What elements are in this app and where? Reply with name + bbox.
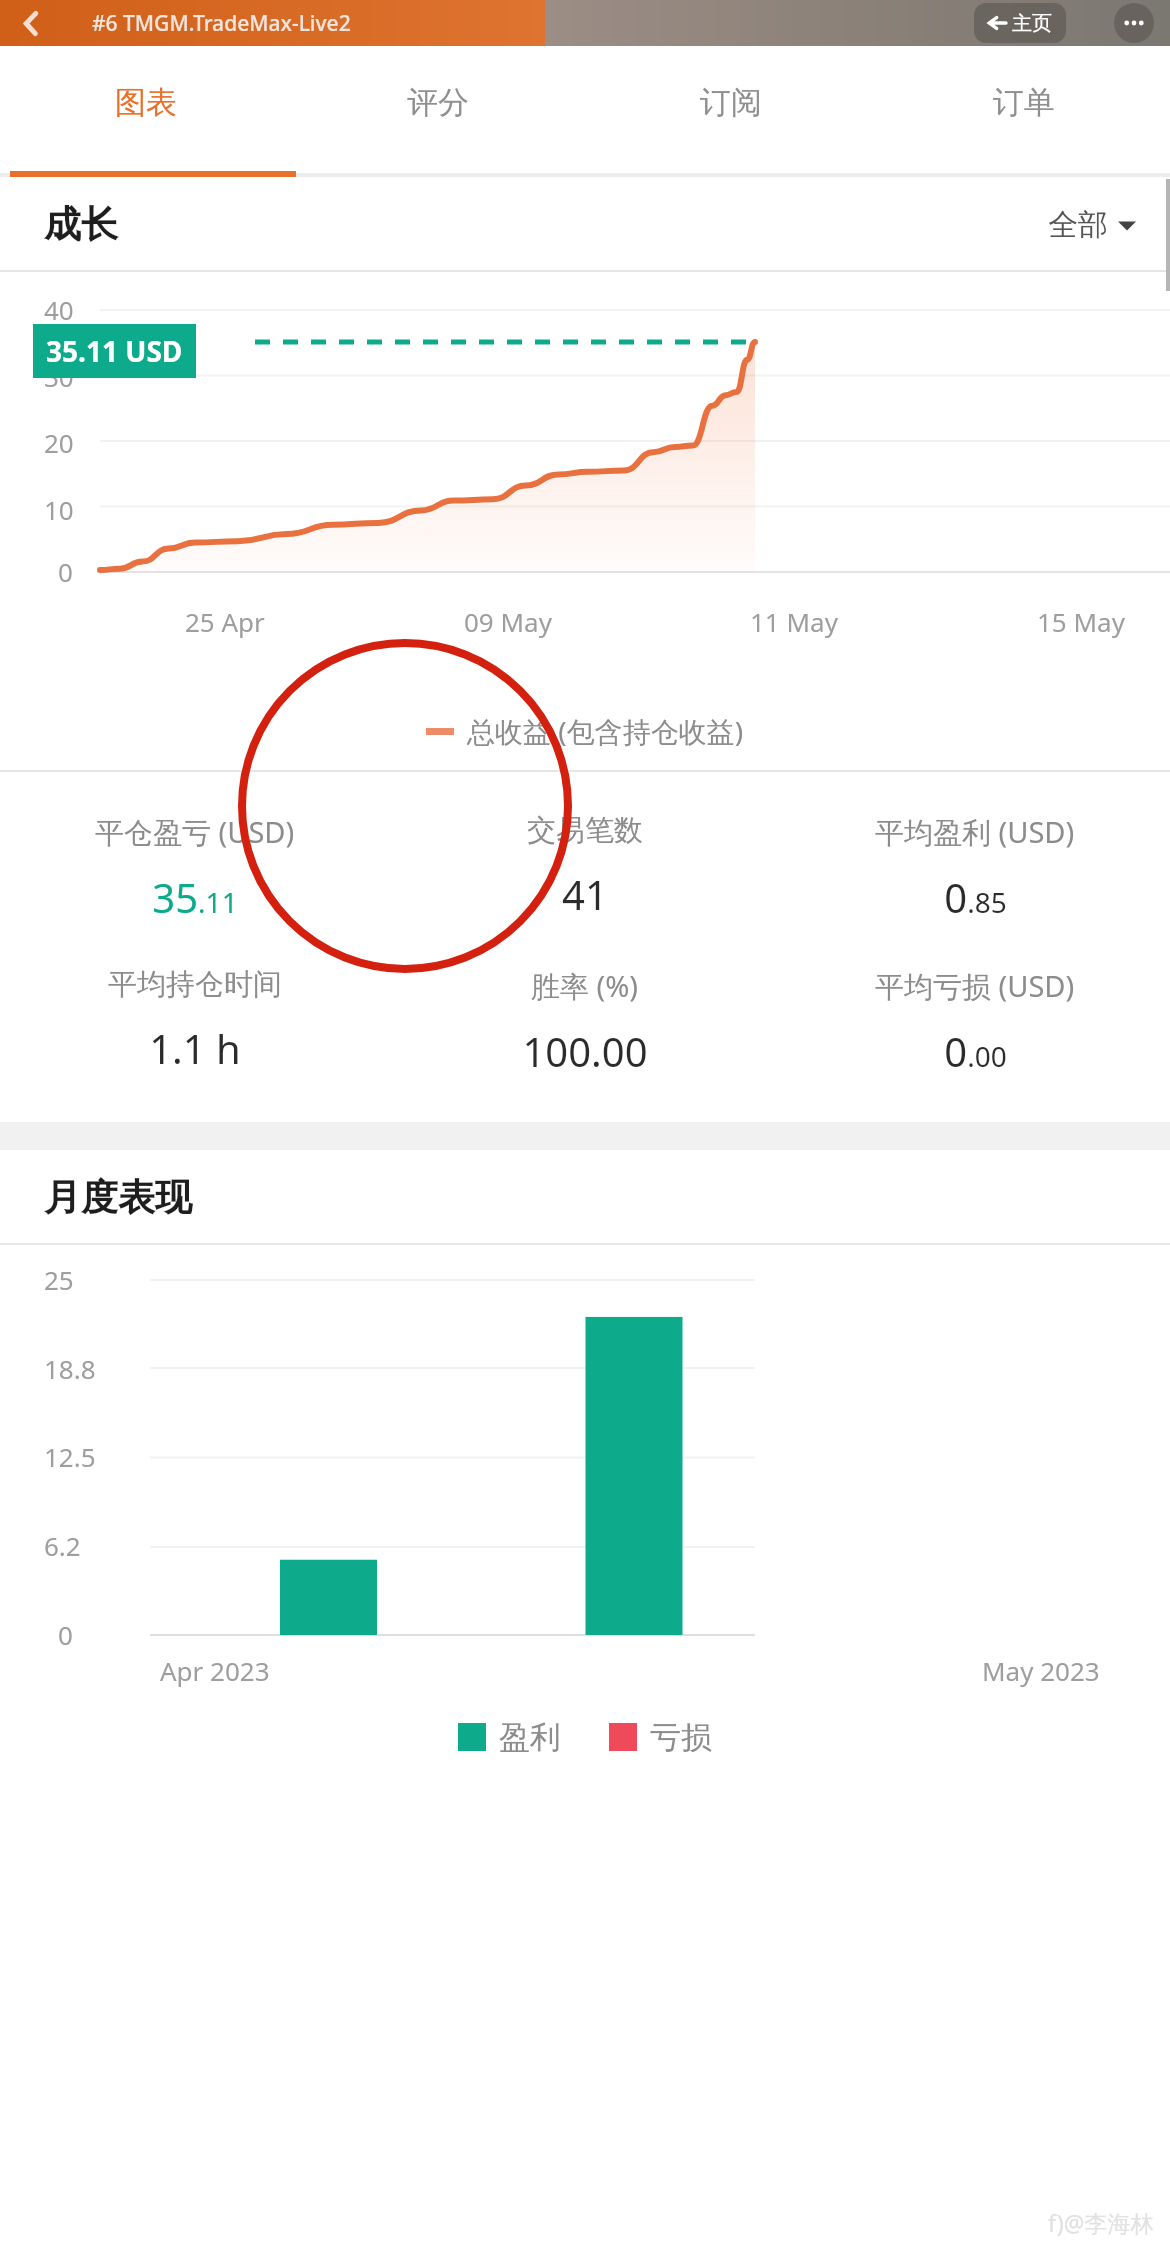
staticText: f)@李海林 — [1048, 2207, 1154, 2238]
button[interactable]: 图表 — [0, 46, 292, 177]
button[interactable]: 订阅 — [584, 46, 877, 177]
button[interactable]: 主页 — [974, 3, 1066, 43]
button[interactable]: 交易笔数 — [390, 812, 780, 921]
staticText: 胜率 (%) — [531, 966, 639, 1006]
staticText: May 2023 — [982, 1653, 1100, 1688]
staticText: 09 May — [464, 604, 552, 639]
staticText: 30 — [44, 359, 74, 394]
staticText: 35.11 — [152, 870, 238, 924]
staticText: #6 TMGM.TradeMax-Live2 — [92, 9, 351, 38]
button[interactable]: 订单 — [877, 46, 1170, 177]
button[interactable]: 胜率 (%) — [390, 966, 780, 1078]
staticText: 20 — [44, 425, 74, 460]
staticText: 25 — [44, 1262, 74, 1297]
button[interactable]: 平均亏损 (USD) — [780, 966, 1170, 1078]
staticText: 6.2 — [44, 1528, 81, 1563]
staticText: 盈利 — [499, 1718, 561, 1757]
staticText: 评分 — [407, 83, 469, 122]
staticText: 总收益 (包含持仓收益) — [467, 712, 744, 750]
staticText: 平均盈利 (USD) — [875, 812, 1075, 852]
staticText: Apr 2023 — [160, 1653, 270, 1688]
staticText: 月度表现 — [44, 1174, 192, 1221]
button[interactable]: More options — [1114, 3, 1154, 43]
staticText: 图表 — [115, 83, 177, 122]
button[interactable]: 评分 — [292, 46, 584, 177]
staticText: 0 — [58, 554, 73, 589]
staticText: 0.00 — [944, 1024, 1007, 1078]
staticText: 订阅 — [700, 83, 762, 122]
staticText: 订单 — [993, 83, 1055, 122]
staticText: 15 May — [1037, 604, 1125, 639]
staticText: 平均持仓时间 — [108, 966, 282, 1003]
staticText: 平均亏损 (USD) — [875, 966, 1075, 1006]
staticText: 0.85 — [944, 870, 1007, 924]
staticText: 35.11 USD — [46, 332, 183, 370]
staticText: 11 May — [750, 604, 838, 639]
button[interactable]: 平均持仓时间 — [0, 966, 390, 1075]
button[interactable]: 平仓盈亏 (USD) — [0, 812, 390, 924]
staticText: 交易笔数 — [527, 812, 643, 849]
staticText: 41 — [562, 867, 608, 921]
staticText: 平仓盈亏 (USD) — [95, 812, 295, 852]
staticText: 亏损 — [650, 1718, 712, 1757]
staticText: 全部 — [1048, 206, 1108, 244]
staticText: 1.1 h — [149, 1021, 241, 1075]
staticText: 10 — [44, 492, 74, 527]
button[interactable]: 全部 — [1048, 206, 1136, 244]
staticText: 12.5 — [44, 1439, 96, 1474]
staticText: 成长 — [44, 201, 118, 248]
staticText: 18.8 — [44, 1351, 96, 1386]
staticText: 25 Apr — [185, 604, 265, 639]
staticText: 40 — [44, 292, 74, 327]
staticText: 主页 — [1012, 11, 1052, 36]
button[interactable]: Back — [10, 2, 52, 44]
staticText: 0 — [58, 1617, 73, 1652]
staticText: 100.00 — [522, 1024, 648, 1078]
button[interactable]: 平均盈利 (USD) — [780, 812, 1170, 924]
